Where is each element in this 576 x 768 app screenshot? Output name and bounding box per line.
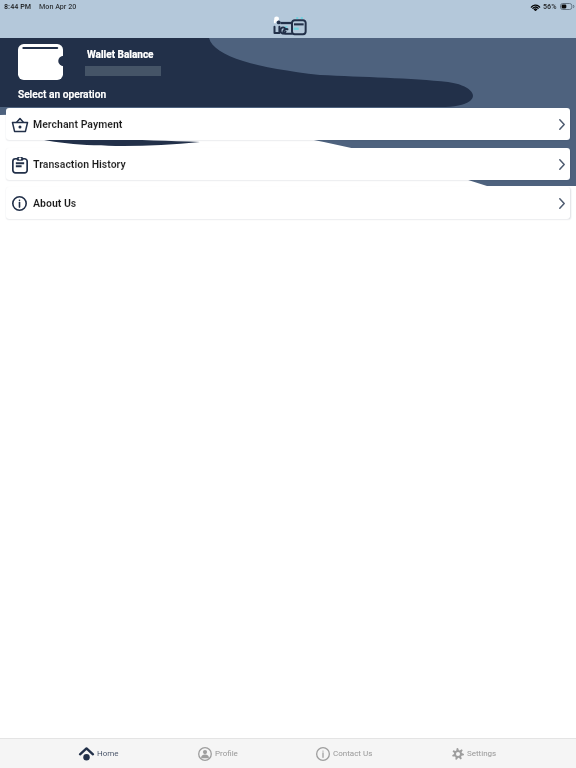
staticText: Home [97, 749, 119, 758]
button[interactable]: Profile [198, 739, 238, 768]
button[interactable]: Settings [452, 739, 497, 768]
staticText: Merchant Payment [33, 118, 123, 130]
staticText: Select an operation [18, 89, 107, 101]
button[interactable]: Home [79, 739, 119, 768]
button[interactable]: Contact Us [316, 739, 373, 768]
staticText: Mon Apr 20 [39, 2, 77, 10]
staticText: Settings [467, 749, 497, 758]
staticText: 56% [543, 2, 557, 10]
staticText: Contact Us [333, 749, 373, 758]
staticText: Transaction History [33, 158, 126, 170]
staticText: Profile [215, 749, 238, 758]
button[interactable]: Transaction History [6, 148, 570, 180]
button[interactable]: Merchant Payment [6, 108, 570, 140]
staticText: About Us [33, 197, 77, 209]
staticText: Wallet Balance [87, 49, 154, 61]
staticText: 8:44 PM [4, 2, 32, 10]
button[interactable]: About Us [6, 187, 570, 219]
